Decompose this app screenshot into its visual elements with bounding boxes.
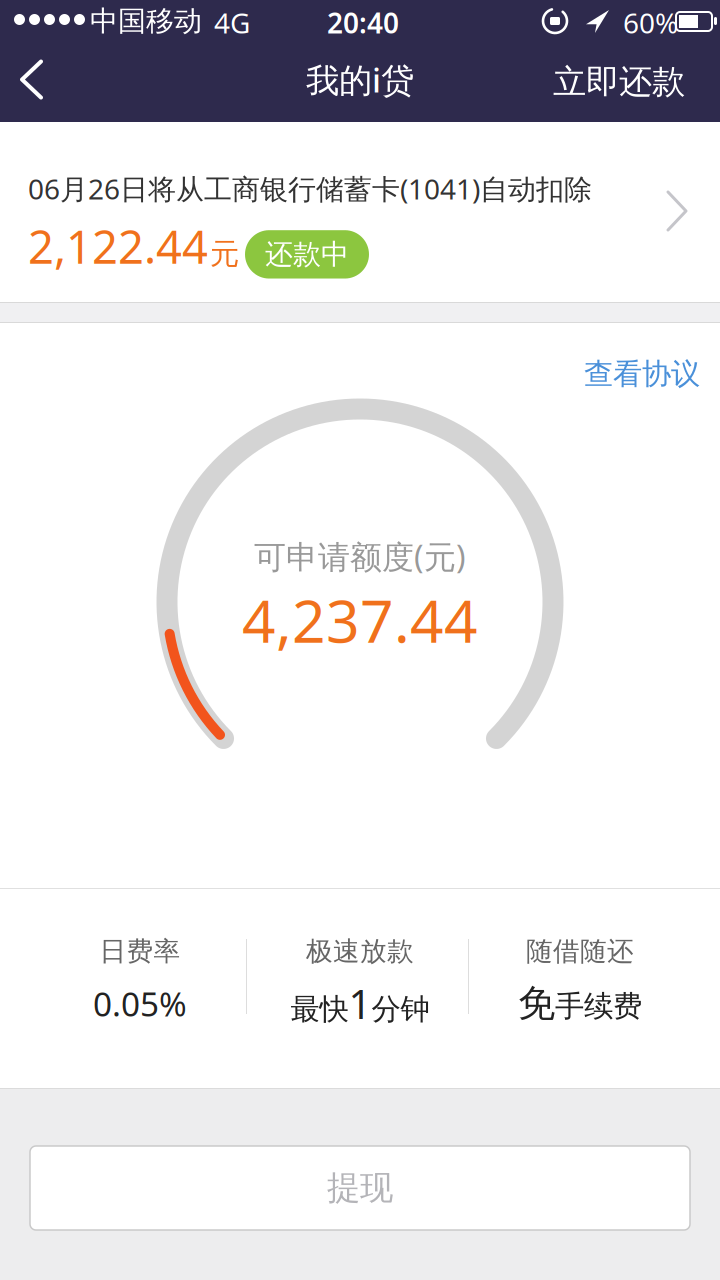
staticText: 还款中 bbox=[265, 237, 349, 272]
staticText: 4,237.44 bbox=[242, 581, 478, 659]
button[interactable] bbox=[0, 39, 65, 119]
button[interactable]: 提现 bbox=[30, 1146, 690, 1230]
staticText: 最快 bbox=[290, 991, 348, 1027]
staticText: 提现 bbox=[327, 1167, 393, 1208]
staticText: 随借随还 bbox=[526, 935, 634, 968]
staticText: 20:40 bbox=[327, 4, 399, 41]
staticText: 手续费 bbox=[555, 988, 642, 1024]
staticText: 我的i贷 bbox=[306, 57, 414, 102]
staticText: 日费率 bbox=[99, 935, 180, 968]
staticText: 中国移动 bbox=[90, 4, 202, 38]
staticText: 4G bbox=[214, 4, 250, 41]
staticText: 元 bbox=[210, 236, 239, 272]
staticText: 1 bbox=[348, 977, 371, 1030]
staticText: 可申请额度(元) bbox=[254, 535, 466, 577]
button[interactable]: 06月26日将从工商银行储蓄卡(1041)自动扣除 bbox=[0, 122, 720, 302]
staticText: 立即还款 bbox=[553, 61, 685, 102]
staticText: 极速放款 bbox=[306, 935, 414, 968]
staticText: 06月26日将从工商银行储蓄卡(1041)自动扣除 bbox=[28, 170, 592, 207]
button[interactable]: 查看协议 bbox=[584, 348, 700, 400]
staticText: 0.05% bbox=[93, 981, 187, 1026]
staticText: 查看协议 bbox=[584, 356, 700, 392]
staticText: 60% bbox=[623, 4, 678, 41]
staticText: 2,122.44 bbox=[28, 216, 208, 276]
button[interactable]: 立即还款 bbox=[553, 39, 685, 124]
staticText: 免 bbox=[518, 981, 555, 1026]
staticText: 分钟 bbox=[371, 991, 429, 1027]
